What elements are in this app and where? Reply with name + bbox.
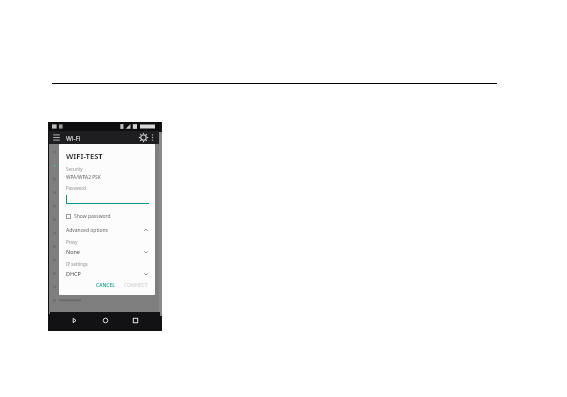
button[interactable]: Recent apps bbox=[130, 315, 141, 326]
staticText: Wi-Fi bbox=[66, 134, 81, 142]
staticText: CONNECT bbox=[124, 282, 148, 289]
staticText: None bbox=[66, 248, 80, 255]
button[interactable]: Advanced options bbox=[66, 225, 149, 235]
button[interactable]: CONNECT bbox=[121, 280, 151, 291]
button[interactable]: DHCP bbox=[66, 269, 149, 278]
staticText: CANCEL bbox=[96, 282, 115, 289]
staticText: Security bbox=[66, 166, 83, 172]
staticText: WIFI-TEST bbox=[66, 151, 103, 161]
staticText: WPA/WPA2 PSK bbox=[66, 174, 101, 181]
button[interactable]: CANCEL bbox=[93, 280, 118, 291]
button[interactable]: Wi-Fi settings bbox=[139, 133, 148, 142]
staticText: Advanced options bbox=[66, 227, 109, 234]
staticText: DHCP bbox=[66, 270, 81, 277]
button[interactable]: More options bbox=[148, 133, 157, 142]
button[interactable] bbox=[66, 191, 149, 204]
staticText: Proxy bbox=[66, 239, 78, 245]
staticText: IP settings bbox=[66, 261, 88, 267]
staticText: Password bbox=[66, 185, 86, 191]
staticText: Show password bbox=[74, 213, 111, 220]
button[interactable]: Navigation menu bbox=[52, 133, 61, 142]
button[interactable]: Home bbox=[100, 315, 111, 326]
button[interactable]: Show password bbox=[66, 211, 149, 221]
button[interactable]: Back bbox=[69, 315, 80, 326]
button[interactable]: None bbox=[66, 247, 149, 256]
